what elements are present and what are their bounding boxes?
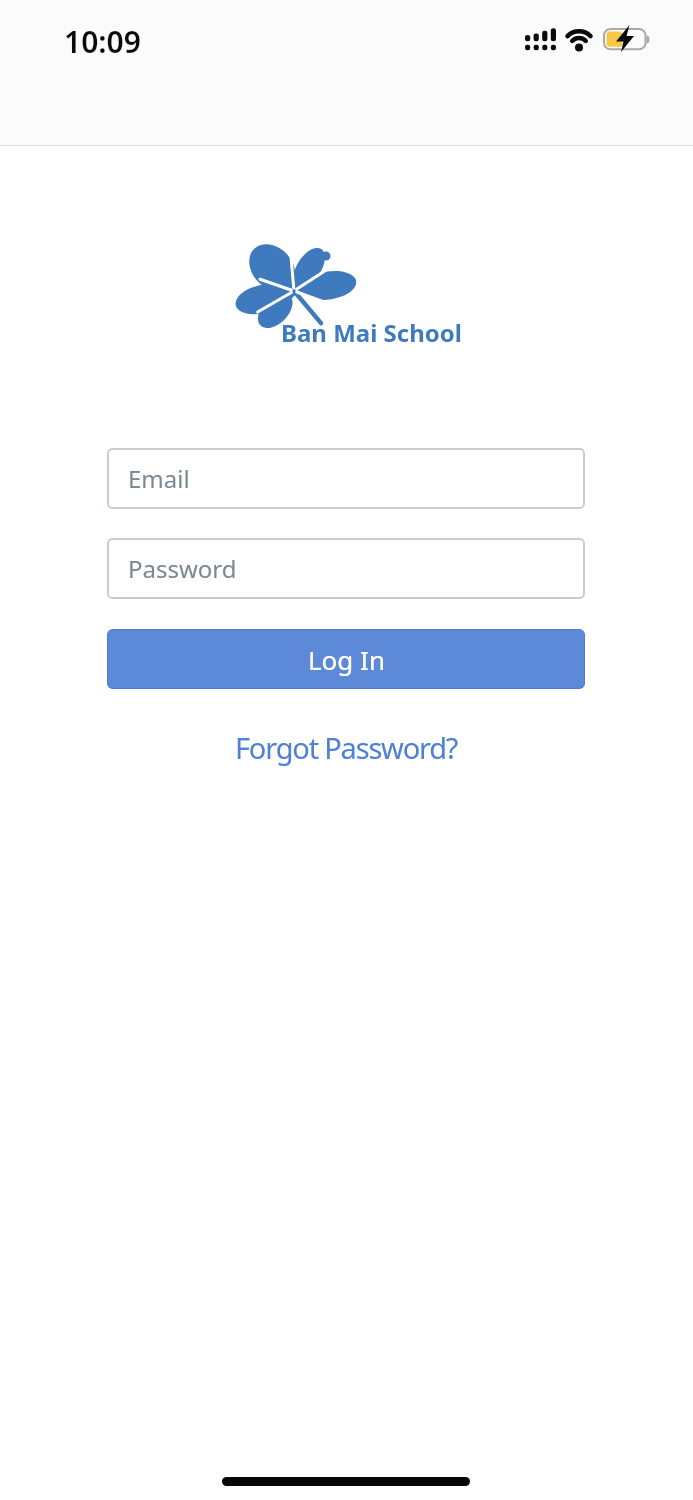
staticText: Password bbox=[128, 552, 237, 585]
staticText: Ban Mai School bbox=[281, 316, 462, 349]
button[interactable]: Password bbox=[107, 538, 585, 599]
staticText: Forgot Password? bbox=[235, 728, 458, 767]
staticText: Email bbox=[128, 462, 190, 495]
staticText: 10:09 bbox=[64, 21, 141, 62]
staticText: Log In bbox=[308, 642, 385, 677]
button[interactable]: Email bbox=[107, 448, 585, 509]
button[interactable]: Forgot Password? bbox=[235, 728, 458, 767]
button[interactable]: Log In bbox=[107, 629, 585, 689]
